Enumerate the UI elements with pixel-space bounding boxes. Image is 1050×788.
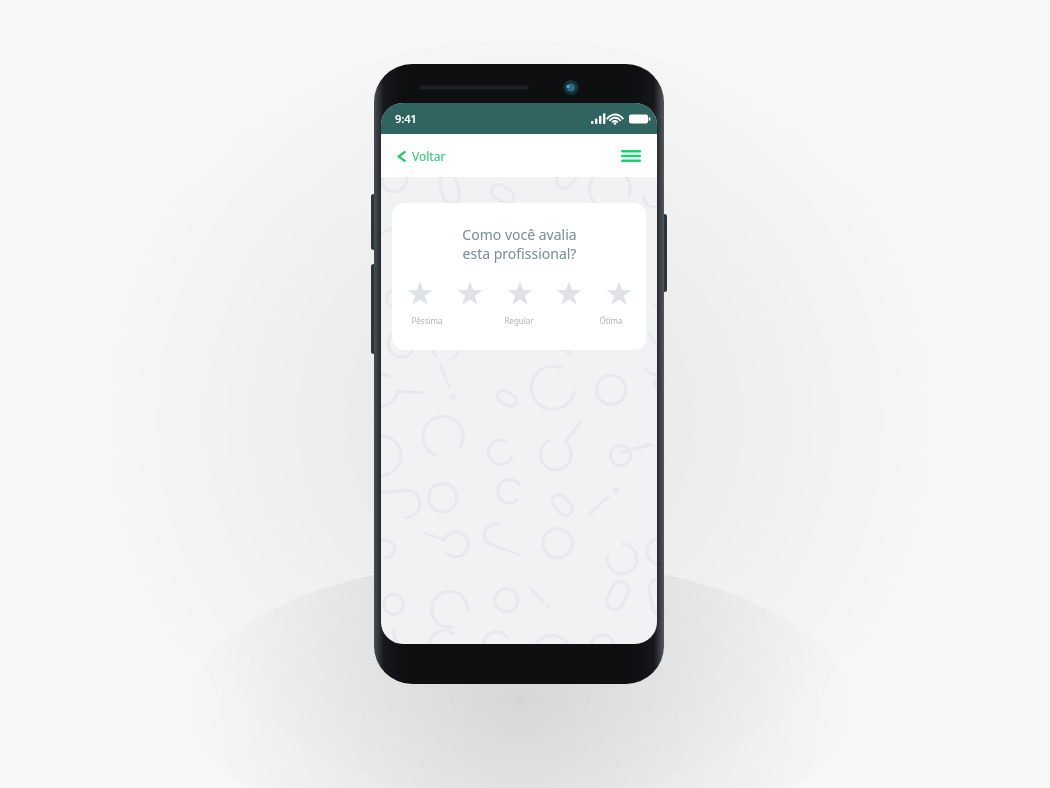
staticText: Ótima	[599, 315, 623, 326]
staticText: Péssima	[411, 315, 443, 326]
staticText: Como você avalia esta profissional?	[462, 225, 577, 263]
button[interactable]: Voltar	[390, 143, 452, 169]
button[interactable]: Rate 1 stars	[405, 279, 434, 308]
button[interactable]: Rate 5 stars	[604, 279, 633, 308]
staticText: Regular	[504, 315, 534, 326]
button[interactable]: Rate 3 stars	[505, 279, 534, 308]
staticText: Voltar	[412, 148, 446, 164]
button[interactable]: Como você avalia esta profissional?	[392, 203, 646, 350]
button[interactable]: Rate 4 stars	[554, 279, 583, 308]
button[interactable]: Menu	[615, 142, 647, 170]
button[interactable]: Rate 2 stars	[455, 279, 484, 308]
staticText: 9:41	[395, 111, 417, 126]
